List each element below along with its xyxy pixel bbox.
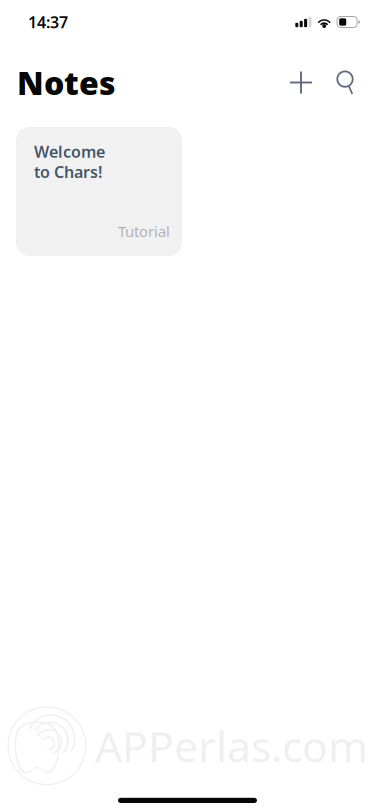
staticText: Welcome bbox=[34, 141, 105, 162]
staticText: Tutorial bbox=[118, 221, 170, 241]
staticText: APPerlas.com bbox=[95, 717, 368, 774]
staticText: to Chars! bbox=[34, 161, 102, 182]
button[interactable]: Search bbox=[323, 60, 367, 104]
staticText: Notes bbox=[17, 61, 116, 104]
button[interactable]: New note bbox=[279, 60, 323, 104]
staticText: 14:37 bbox=[28, 11, 68, 33]
button[interactable]: Welcome bbox=[16, 127, 182, 256]
